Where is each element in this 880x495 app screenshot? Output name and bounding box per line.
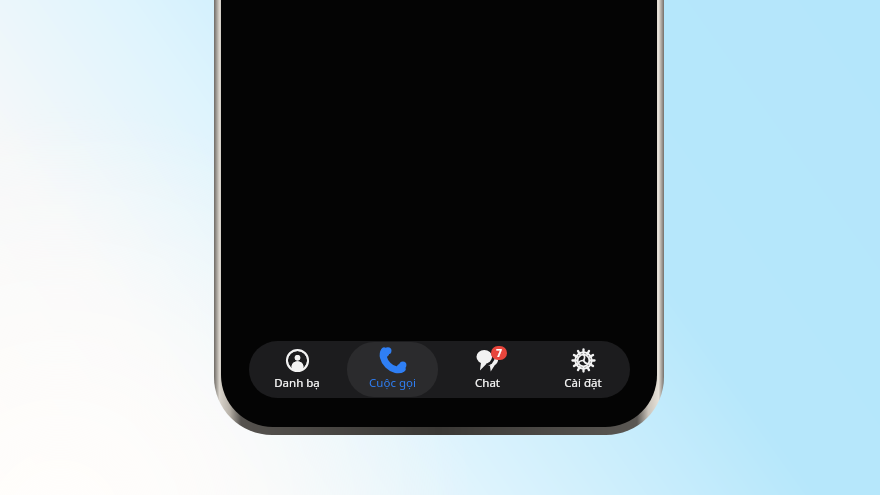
staticText: Danh bạ (274, 375, 320, 391)
staticText: Chat (475, 375, 500, 391)
button[interactable]: Cài đặt (537, 342, 628, 397)
staticText: Cài đặt (564, 375, 602, 391)
button[interactable]: Cuộc gọi (347, 342, 438, 397)
button[interactable]: Danh bạ (251, 342, 343, 397)
button[interactable]: Chat (442, 342, 533, 397)
staticText: Cuộc gọi (369, 375, 416, 391)
staticText: 7 (496, 346, 502, 360)
